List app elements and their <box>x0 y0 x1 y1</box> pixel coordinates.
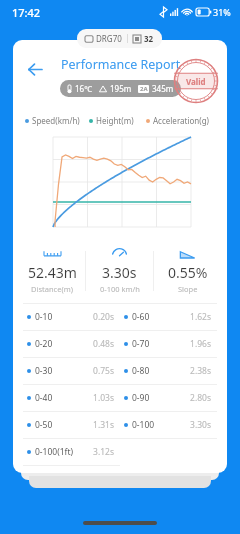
button[interactable]: 0-90 <box>120 385 217 411</box>
staticText: 0-100 km/h <box>100 284 140 294</box>
staticText: 345m <box>152 83 174 94</box>
button[interactable]: 3.30s <box>86 241 153 301</box>
staticText: Acceleration(g) <box>153 115 209 126</box>
staticText: Slope <box>178 284 198 294</box>
staticText: 0-100 <box>132 419 155 431</box>
staticText: DRG70 <box>96 33 122 44</box>
staticText: Performance Report <box>61 56 181 73</box>
button[interactable]: 52.43m <box>19 241 85 301</box>
button[interactable]: 0.55% <box>154 241 221 301</box>
staticText: 0-60 <box>132 311 150 323</box>
button[interactable]: 0-20 <box>23 331 120 357</box>
staticText: 0-40 <box>35 392 53 404</box>
button[interactable]: 0-30 <box>23 358 120 384</box>
staticText: 2.38s <box>190 365 211 377</box>
button[interactable]: Back <box>21 56 47 82</box>
staticText: 0-90 <box>132 392 150 404</box>
staticText: 3.12s <box>93 446 114 458</box>
staticText: Distance(m) <box>31 284 73 294</box>
button[interactable]: 0-80 <box>120 358 217 384</box>
staticText: 1.62s <box>190 311 211 323</box>
staticText: 0.75s <box>93 365 114 377</box>
staticText: Height(m) <box>96 115 134 126</box>
button[interactable]: 0-60 <box>120 304 217 330</box>
staticText: 2A <box>140 85 148 93</box>
staticText: 3.30s <box>190 419 211 431</box>
staticText: 1.03s <box>93 392 114 404</box>
staticText: 0.48s <box>93 338 114 350</box>
staticText: 0-30 <box>35 365 53 377</box>
staticText: 1.31s <box>93 419 114 431</box>
button[interactable]: 0-10 <box>23 304 120 330</box>
staticText: 52.43m <box>28 263 77 282</box>
staticText: 0-70 <box>132 338 150 350</box>
button[interactable]: 0-70 <box>120 331 217 357</box>
staticText: 2.80s <box>190 392 211 404</box>
staticText: 31% <box>213 6 231 18</box>
staticText: 0-80 <box>132 365 150 377</box>
staticText: 0-100(1ft) <box>35 446 74 458</box>
button[interactable]: 0-100(1ft) <box>23 439 120 465</box>
staticText: 0.20s <box>93 311 114 323</box>
staticText: 17:42 <box>12 5 41 20</box>
staticText: Speed(km/h) <box>32 115 80 126</box>
staticText: 0-50 <box>35 419 53 431</box>
button[interactable]: 0-40 <box>23 385 120 411</box>
button[interactable]: 0-100 <box>120 412 217 438</box>
button[interactable]: DRG70 <box>77 29 162 48</box>
staticText: 32 <box>144 33 154 44</box>
staticText: 0-20 <box>35 338 53 350</box>
staticText: 0.55% <box>168 263 208 282</box>
staticText: 16℃ <box>75 83 93 94</box>
staticText: 195m <box>110 83 132 94</box>
staticText: Valid <box>186 76 206 87</box>
button[interactable]: 0-50 <box>23 412 120 438</box>
staticText: 3.30s <box>102 263 137 282</box>
staticText: 0-10 <box>35 311 53 323</box>
staticText: 1.96s <box>190 338 211 350</box>
